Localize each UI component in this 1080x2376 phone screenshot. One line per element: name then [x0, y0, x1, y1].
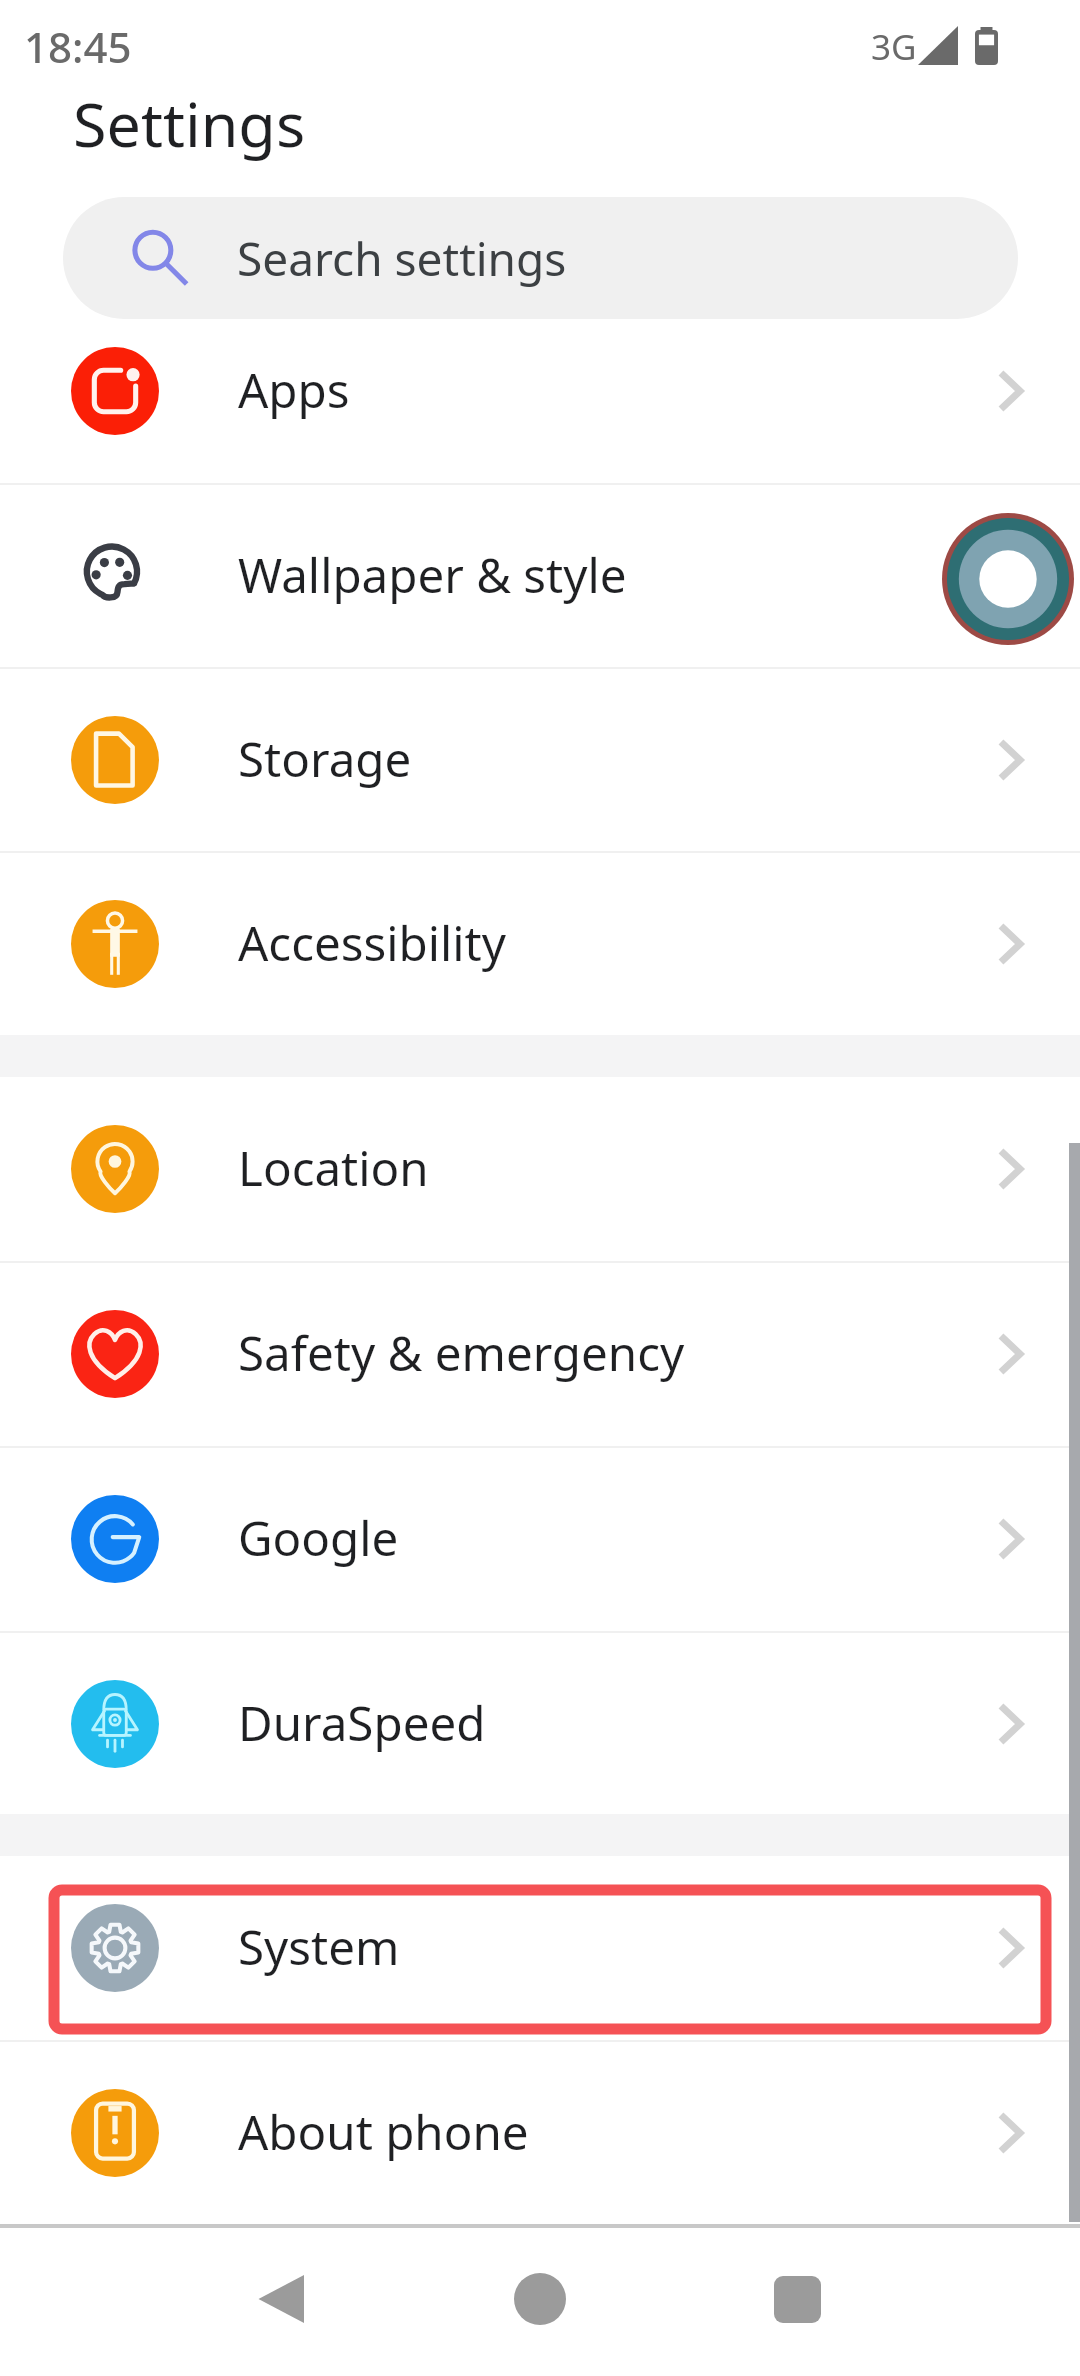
staticText: Wallpaper & style: [238, 542, 627, 607]
staticText: Google: [238, 1505, 399, 1570]
staticText: System: [238, 1914, 400, 1979]
button[interactable]: Storage: [0, 668, 1080, 852]
button[interactable]: Home: [485, 2244, 595, 2354]
staticText: Accessibility: [238, 910, 506, 975]
staticText: Search settings: [237, 227, 567, 290]
button[interactable]: Wallpaper & style: [0, 484, 1080, 668]
staticText: Apps: [238, 357, 350, 422]
staticText: 3G: [871, 23, 917, 71]
staticText: Safety & emergency: [238, 1320, 685, 1385]
staticText: About phone: [238, 2099, 529, 2164]
button[interactable]: Safety & emergency: [0, 1262, 1080, 1446]
staticText: Location: [238, 1135, 429, 1200]
button[interactable]: Location: [0, 1077, 1080, 1261]
button[interactable]: Accessibility: [0, 852, 1080, 1036]
button[interactable]: About phone: [0, 2041, 1080, 2225]
button[interactable]: DuraSpeed: [0, 1632, 1080, 1816]
button[interactable]: Google: [0, 1447, 1080, 1631]
staticText: Storage: [238, 726, 412, 791]
staticText: DuraSpeed: [238, 1690, 486, 1755]
button[interactable]: Back: [227, 2244, 337, 2354]
staticText: 18:45: [24, 18, 132, 75]
staticText: Settings: [73, 82, 306, 165]
button[interactable]: Search settings: [63, 197, 1018, 319]
button[interactable]: System: [0, 1856, 1080, 2040]
button[interactable]: Recents: [742, 2244, 852, 2354]
button[interactable]: Apps: [0, 299, 1080, 483]
